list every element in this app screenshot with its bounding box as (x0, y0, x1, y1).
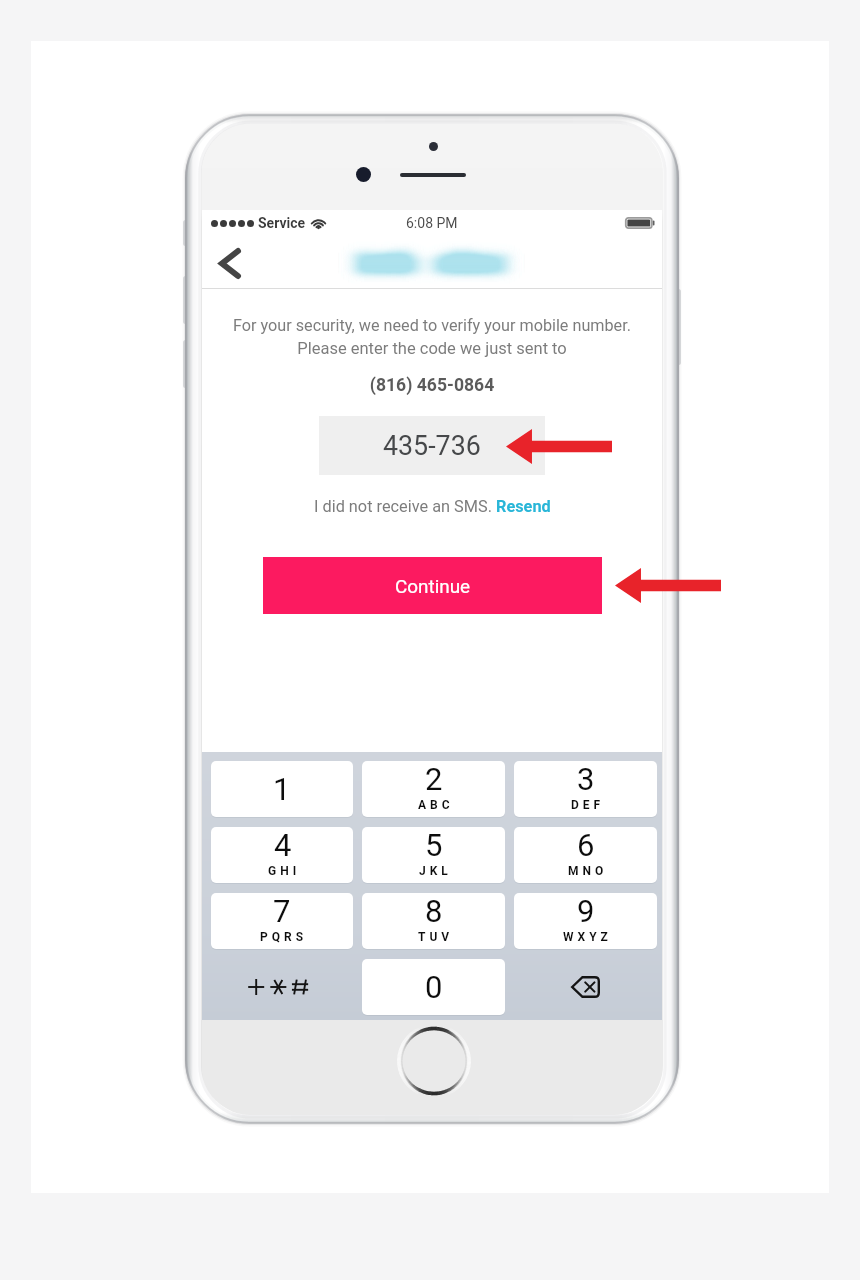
staticText: 4 (274, 827, 292, 863)
button[interactable]: Continue (263, 557, 602, 614)
staticText: 8 (425, 893, 443, 929)
button[interactable]: 1 (211, 761, 353, 817)
staticText: 6 (577, 827, 595, 863)
button[interactable]: 4 (211, 827, 353, 883)
button[interactable]: 9 (514, 893, 657, 949)
staticText: 5 (425, 827, 443, 863)
button[interactable]: 7 (211, 893, 353, 949)
staticText: 7 (273, 893, 291, 929)
button[interactable]: 5 (362, 827, 505, 883)
button[interactable]: I did not receive an SMS. Resend (314, 497, 551, 516)
staticText: ABC (418, 798, 454, 812)
staticText: (816) 465-0864 (202, 375, 662, 396)
staticText: 435-736 (383, 430, 481, 461)
staticText: Please enter the code we just sent to (202, 339, 662, 358)
staticText: GHI (268, 864, 301, 878)
staticText: 3 (577, 761, 595, 797)
staticText: 9 (577, 893, 595, 929)
staticText: PQRS (260, 930, 308, 944)
button[interactable]: 8 (362, 893, 505, 949)
staticText: 6:08 PM (406, 215, 458, 231)
button[interactable]: Backspace (514, 959, 657, 1015)
staticText: WXYZ (563, 930, 612, 944)
staticText: For your security, we need to verify you… (202, 316, 662, 335)
button[interactable]: 2 (362, 761, 505, 817)
button[interactable]: 0 (362, 959, 505, 1015)
button[interactable]: 6 (514, 827, 657, 883)
button[interactable]: 3 (514, 761, 657, 817)
staticText: TUV (418, 930, 454, 944)
staticText: Continue (395, 575, 471, 597)
staticText: MNO (568, 864, 608, 878)
staticText: DEF (571, 798, 605, 812)
staticText: JKL (419, 864, 452, 878)
staticText: 0 (425, 969, 443, 1005)
button[interactable]: Symbols (211, 959, 353, 1015)
button[interactable]: 435-736 (319, 416, 545, 475)
button[interactable]: Back (206, 239, 254, 287)
staticText: 2 (425, 761, 443, 797)
staticText: Service (258, 215, 306, 231)
staticText: 1 (273, 771, 291, 807)
